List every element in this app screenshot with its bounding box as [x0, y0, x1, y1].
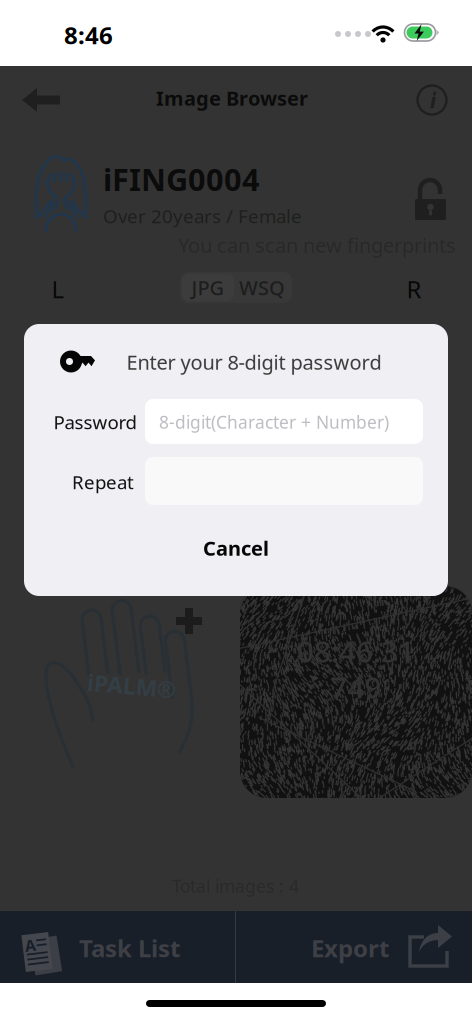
staticText: Over 20years / Female	[103, 204, 302, 228]
staticText: You can scan new fingerprints	[178, 232, 456, 258]
staticText: Repeat	[72, 470, 134, 494]
staticText: R	[406, 273, 421, 305]
staticText: L	[51, 273, 64, 305]
staticText: JPG	[191, 274, 224, 301]
button[interactable]: WSQ	[234, 274, 290, 301]
staticText: Password	[53, 410, 136, 434]
staticText: 749	[330, 667, 381, 706]
staticText: Export	[311, 932, 389, 964]
staticText: Enter your 8-digit password	[126, 349, 381, 375]
staticText: Cancel	[203, 535, 269, 561]
staticText: iPALM®	[87, 672, 176, 702]
button[interactable]: Cancel	[24, 522, 448, 574]
button[interactable]: Unlocked	[415, 169, 447, 211]
staticText: A	[25, 934, 36, 955]
staticText: 8:46	[64, 19, 113, 51]
button[interactable]: Information	[404, 76, 460, 124]
staticText: iFING0004	[103, 159, 260, 199]
button[interactable]: JPG	[182, 274, 234, 301]
button[interactable]: A	[0, 911, 235, 983]
staticText: Image Browser	[156, 85, 308, 111]
staticText: 08:46:31	[297, 631, 415, 670]
staticText: WSQ	[239, 274, 285, 301]
button[interactable]: Export	[236, 911, 472, 983]
button[interactable]: Back	[8, 76, 74, 124]
staticText: Task List	[79, 932, 180, 964]
staticText: 8-digit(Character + Number)	[159, 410, 389, 433]
